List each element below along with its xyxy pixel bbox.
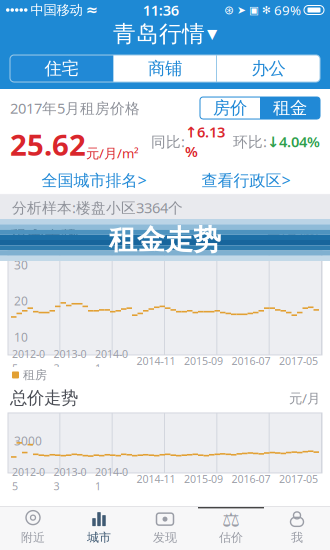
staticText: 全国城市排名> [41, 169, 146, 190]
staticText: 2014-11 [136, 354, 175, 368]
staticText: ↓4.04% [267, 132, 320, 151]
staticText: 2014-01 [95, 347, 128, 375]
staticText: 2016-07 [231, 472, 270, 486]
staticText: 商铺 [148, 58, 182, 79]
staticText: 总价走势 [10, 387, 78, 409]
button[interactable]: 房价 [200, 97, 260, 119]
button[interactable]: 发现 [132, 506, 198, 550]
staticText: 2013-03 [53, 347, 86, 375]
staticText: 查看行政区> [201, 169, 290, 190]
staticText: 2016-07 [231, 354, 270, 368]
staticText: 10 [14, 329, 28, 345]
staticText: 25.62 [10, 125, 86, 164]
staticText: 租金走势 [10, 225, 78, 247]
staticText: 住宅 [44, 58, 78, 79]
button[interactable]: 我 [264, 506, 330, 550]
button[interactable]: 全国城市排名> [24, 166, 164, 194]
staticText: 我 [291, 530, 303, 545]
button[interactable]: 办公 [217, 55, 320, 82]
staticText: 中国移动 [30, 2, 82, 18]
staticText: ▼ [207, 26, 217, 41]
staticText: 元/月/m² [267, 227, 320, 245]
staticText: 2017-05 [279, 354, 318, 368]
staticText: 租金走势 [109, 223, 221, 257]
staticText: 2017年5月租房价格 [10, 98, 140, 118]
staticText: 元/月 [289, 389, 320, 407]
staticText: 2014-01 [95, 465, 128, 493]
staticText: ✻ [262, 4, 271, 16]
staticText: 环比: [225, 132, 267, 151]
staticText: 附近 [21, 530, 45, 545]
staticText: ⚖ [222, 508, 240, 531]
staticText: 2015-09 [184, 472, 223, 486]
button[interactable]: 城市 [66, 506, 132, 550]
staticText: 30 [14, 257, 28, 273]
staticText: ≈ [85, 2, 97, 18]
staticText: 2017-05 [279, 472, 318, 486]
staticText: 2012-05 [12, 465, 45, 493]
staticText: 3000 [14, 433, 42, 449]
staticText: 2012-05 [12, 347, 45, 375]
staticText: 20 [14, 293, 28, 309]
staticText: 发现 [153, 530, 177, 545]
staticText: 2014-11 [136, 472, 175, 486]
staticText: 租房 [23, 368, 47, 382]
button[interactable]: 附近 [0, 506, 66, 550]
staticText: 青岛行情 [113, 20, 205, 48]
staticText: 2015-09 [184, 354, 223, 368]
button[interactable]: 青岛行情 [0, 20, 330, 48]
staticText: ↑6.13% [185, 122, 225, 161]
staticText: 元/月/m² [86, 144, 139, 162]
button[interactable]: 商铺 [113, 55, 216, 82]
staticText: ▣ [249, 4, 259, 16]
staticText: ➤ [237, 4, 246, 16]
button[interactable]: 估价 [198, 506, 264, 550]
staticText: 2013-03 [53, 465, 86, 493]
staticText: 城市 [87, 530, 111, 545]
staticText: 11:36 [143, 0, 179, 20]
staticText: 同比: [151, 132, 185, 151]
staticText: 租金 [273, 97, 307, 119]
button[interactable]: 查看行政区> [186, 166, 306, 194]
staticText: 办公 [251, 58, 285, 79]
staticText: ⊛ [224, 3, 234, 17]
staticText: 房价 [213, 97, 247, 119]
staticText: 69% [274, 1, 301, 19]
button[interactable]: 住宅 [10, 55, 113, 82]
staticText: 估价 [219, 530, 243, 545]
button[interactable]: 租金 [260, 97, 320, 119]
staticText: 分析样本:楼盘小区3364个 [12, 198, 183, 217]
